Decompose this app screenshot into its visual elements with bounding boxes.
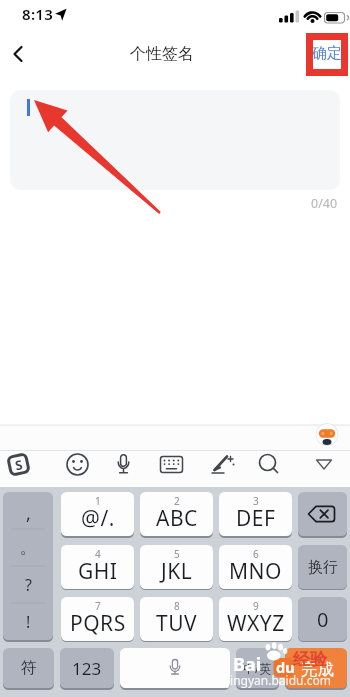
staticText: , <box>26 501 31 526</box>
staticText: 0 <box>317 606 329 633</box>
staticText: TUV <box>156 609 198 638</box>
button[interactable]: 9 <box>219 597 292 641</box>
staticText: Bai <box>233 652 262 677</box>
button[interactable]: 换行 <box>298 545 347 589</box>
button[interactable]: 符 <box>3 648 54 688</box>
button[interactable] <box>254 450 282 480</box>
staticText: DEF <box>236 504 276 533</box>
staticText: GHI <box>78 557 118 586</box>
staticText: 8:13 <box>22 4 54 24</box>
staticText: 4 <box>95 547 101 561</box>
button[interactable]: 中/英 <box>236 648 279 688</box>
staticText: 6 <box>253 547 259 561</box>
button[interactable] <box>3 492 53 640</box>
button[interactable]: 4 <box>61 545 134 589</box>
staticText: WXYZ <box>227 609 285 638</box>
button[interactable] <box>157 450 185 480</box>
staticText: 换行 <box>308 558 338 577</box>
button[interactable]: 0 <box>298 597 347 641</box>
button[interactable]: 6 <box>219 545 292 589</box>
staticText: 8 <box>174 599 180 613</box>
staticText: @/. <box>81 504 115 533</box>
button[interactable] <box>315 423 339 447</box>
staticText: 7 <box>95 599 101 613</box>
staticText: 。 <box>20 538 36 558</box>
button[interactable] <box>63 450 91 480</box>
button[interactable] <box>109 450 137 480</box>
staticText: ABC <box>156 504 198 533</box>
button[interactable]: 7 <box>61 597 134 641</box>
staticText: 5 <box>174 547 180 561</box>
button[interactable]: 5 <box>140 545 213 589</box>
staticText: S <box>13 455 25 475</box>
button[interactable] <box>310 450 338 480</box>
button[interactable]: 1 <box>61 492 134 536</box>
button[interactable]: 123 <box>60 648 114 688</box>
staticText: jingyan.baidu.com <box>227 672 331 688</box>
staticText: JKL <box>161 557 193 586</box>
staticText: 完成 <box>301 659 334 680</box>
staticText: 123 <box>72 657 102 680</box>
button[interactable]: 8 <box>140 597 213 641</box>
staticText: 符 <box>21 658 37 678</box>
button[interactable]: 2 <box>140 492 213 536</box>
button[interactable] <box>298 492 347 536</box>
button[interactable]: S <box>6 452 31 477</box>
staticText: 经验 <box>293 649 327 670</box>
button[interactable] <box>208 450 236 480</box>
button[interactable] <box>120 648 230 688</box>
staticText: PQRS <box>70 609 126 638</box>
staticText: ? <box>25 574 32 596</box>
staticText: ! <box>26 611 31 633</box>
staticText: 2 <box>174 494 180 508</box>
button[interactable] <box>6 40 40 70</box>
button[interactable] <box>10 90 340 190</box>
button[interactable]: 3 <box>219 492 292 536</box>
staticText: 确定 <box>312 44 342 63</box>
button[interactable]: 确定 <box>312 44 342 63</box>
staticText: 1 <box>95 494 101 508</box>
staticText: 个性签名 <box>130 44 194 64</box>
button[interactable] <box>285 648 347 688</box>
staticText: 0/40 <box>311 195 338 212</box>
staticText: 中/英 <box>243 660 272 676</box>
staticText: MNO <box>229 557 282 586</box>
staticText: du <box>276 657 295 677</box>
staticText: 9 <box>253 599 259 613</box>
staticText: 3 <box>253 494 259 508</box>
